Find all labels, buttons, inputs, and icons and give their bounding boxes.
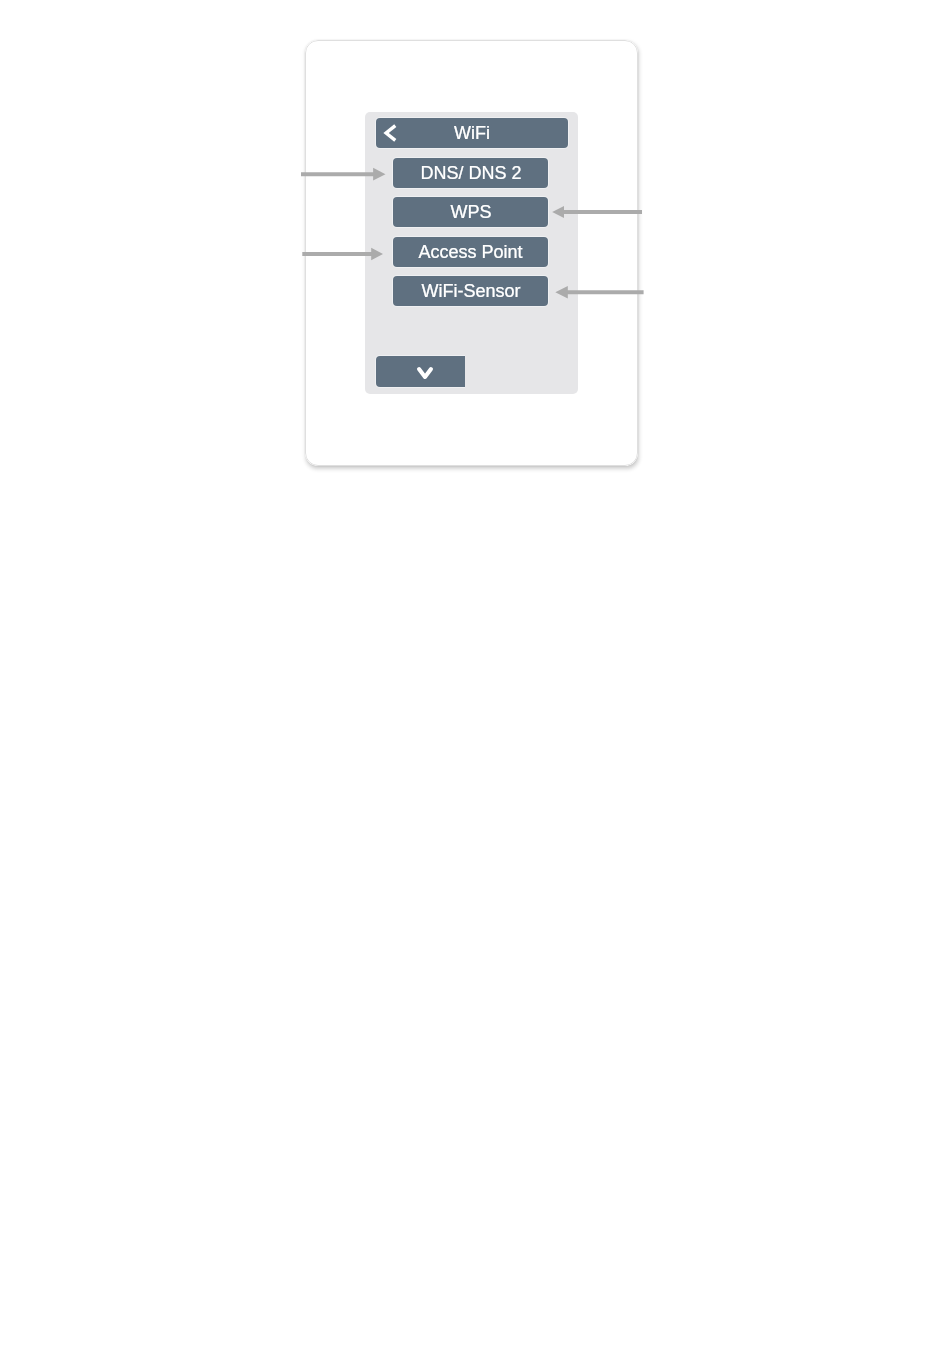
button[interactable]: Back bbox=[376, 118, 406, 148]
button[interactable]: WPS bbox=[393, 197, 548, 227]
button[interactable]: DNS/ DNS 2 bbox=[393, 158, 548, 188]
staticText: DNS/ DNS 2 bbox=[420, 163, 522, 183]
button[interactable]: WiFi-Sensor bbox=[393, 276, 548, 306]
staticText: WiFi-Sensor bbox=[421, 281, 521, 301]
button[interactable]: Access Point bbox=[393, 237, 548, 267]
staticText: WPS bbox=[450, 202, 492, 222]
button[interactable]: Show more bbox=[376, 356, 465, 387]
staticText: WiFi bbox=[454, 123, 490, 143]
staticText: Access Point bbox=[418, 242, 523, 262]
